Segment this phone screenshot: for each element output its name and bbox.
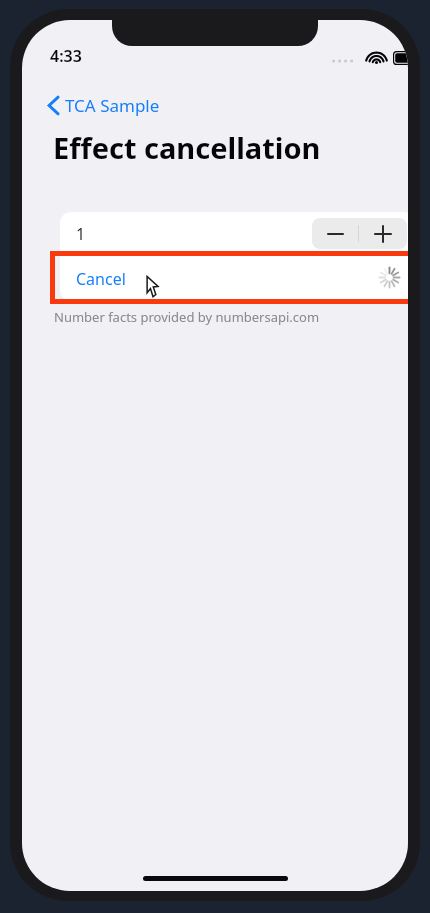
button[interactable]: Decrement (312, 218, 358, 249)
other: Battery (393, 51, 408, 65)
button[interactable]: TCA Sample (44, 90, 164, 120)
button[interactable]: Increment (359, 218, 407, 249)
other: Wi-Fi (367, 50, 386, 65)
staticText: Number facts provided by numbersapi.com (54, 308, 320, 326)
button[interactable]: Cancel (60, 254, 408, 301)
staticText: Cancel (76, 268, 126, 290)
other: Loading (379, 267, 400, 288)
staticText: 1 (76, 223, 86, 245)
staticText: Effect cancellation (53, 128, 321, 167)
staticText: TCA Sample (65, 94, 160, 117)
staticText: 4:33 (50, 45, 82, 67)
